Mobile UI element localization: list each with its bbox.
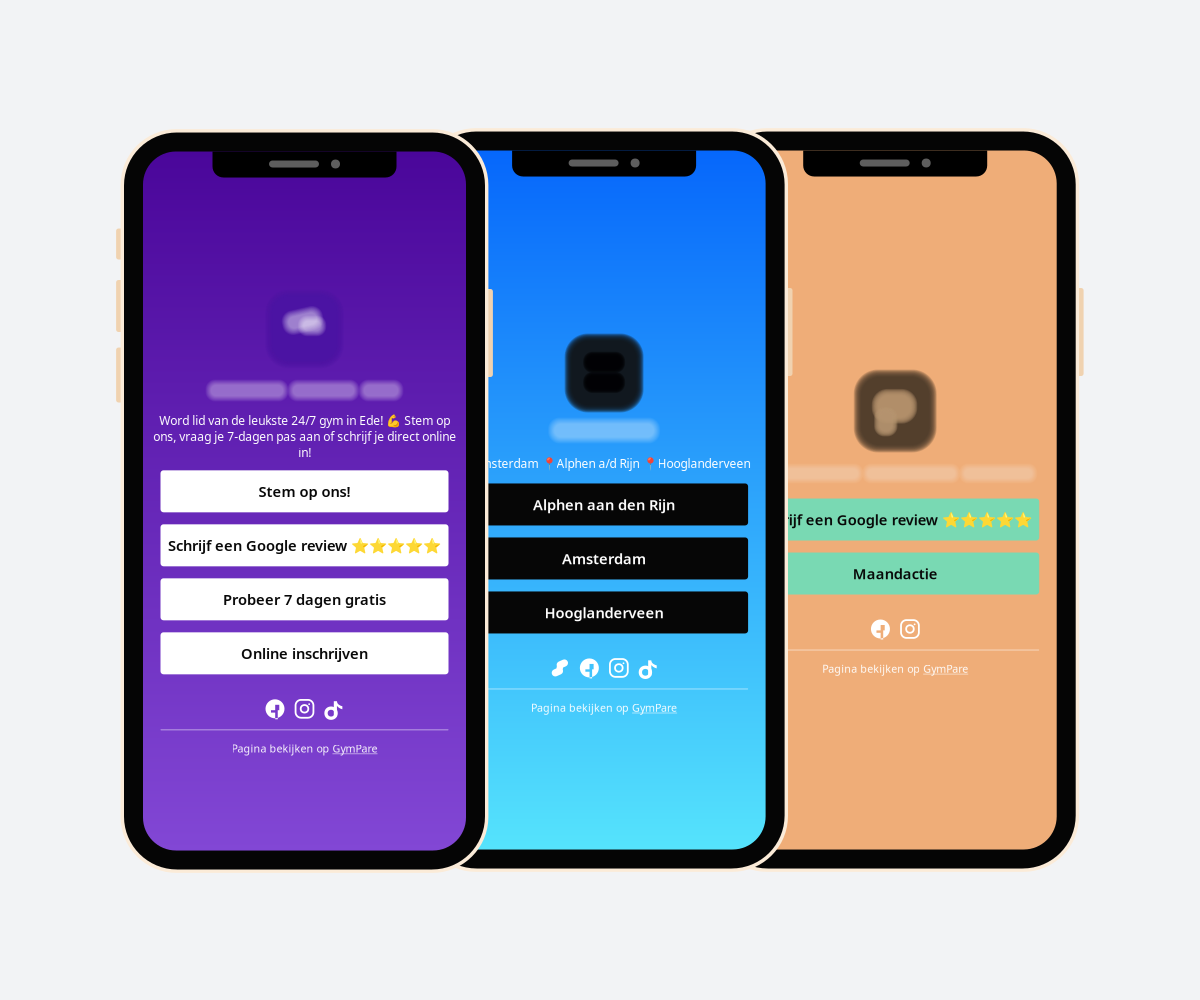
button[interactable]: TikTok [320,695,347,722]
button[interactable]: Instagram [605,654,632,681]
staticText: Schrijf een Google review ⭐⭐⭐⭐⭐ [168,536,441,555]
staticText: Online inschrijven [241,644,368,663]
button[interactable]: Facebook [576,654,603,681]
button[interactable]: Snapchat [546,654,573,681]
button[interactable]: Schrijf een Google review ⭐⭐⭐⭐⭐ [160,524,448,566]
button[interactable]: Pagina bekijken op [231,730,377,755]
staticText: Schrijf een Google review ⭐⭐⭐⭐⭐ [759,510,1032,529]
staticText: GymPare [632,700,677,715]
staticText: Hooglanderveen [545,603,664,622]
staticText: Pagina bekijken op [531,700,629,715]
button[interactable]: Hooglanderveen [460,591,748,633]
button[interactable]: Facebook [261,695,288,722]
button[interactable]: Instagram [896,615,923,642]
button[interactable]: Amsterdam [460,537,748,579]
staticText: GymPare [923,661,968,676]
button[interactable]: Maandactie [751,552,1039,594]
staticText: Word lid van de leukste 24/7 gym in Ede!… [153,412,456,460]
staticText: Maandactie [853,564,938,583]
button[interactable]: Online inschrijven [160,632,448,674]
staticText: Amsterdam [562,549,646,568]
button[interactable]: Instagram [291,695,318,722]
staticText: Stem op ons! [258,482,350,501]
staticText: Alphen aan den Rijn [533,495,675,514]
staticText: 📍Amsterdam 📍Alphen a/d Rijn 📍Hooglanderv… [458,455,751,471]
staticText: Pagina bekijken op [231,741,329,755]
staticText: GymPare [332,741,377,755]
staticText: Probeer 7 dagen gratis [223,590,386,609]
button[interactable]: Probeer 7 dagen gratis [160,578,448,620]
button[interactable]: TikTok [635,654,662,681]
button[interactable]: Schrijf een Google review ⭐⭐⭐⭐⭐ [751,498,1039,540]
button[interactable]: Pagina bekijken op [531,689,677,715]
button[interactable]: Stem op ons! [160,470,448,512]
button[interactable]: Alphen aan den Rijn [460,483,748,525]
staticText: Pagina bekijken op [822,661,920,676]
button[interactable]: Facebook [867,615,894,642]
button[interactable]: Pagina bekijken op [822,650,968,676]
